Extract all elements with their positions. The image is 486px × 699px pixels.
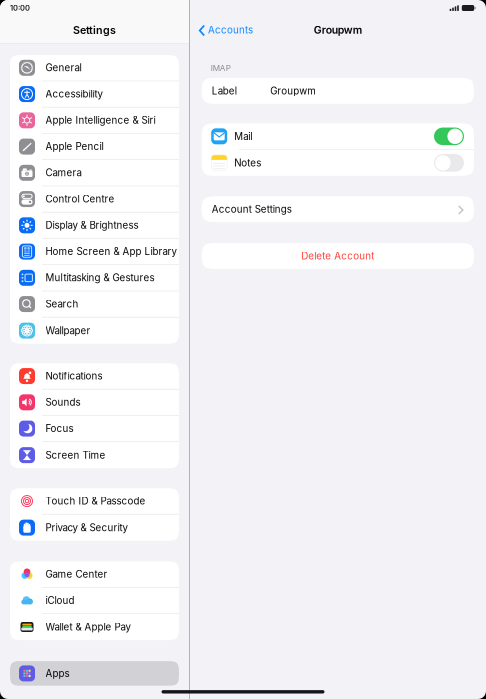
staticText: Focus — [45, 423, 73, 434]
button[interactable]: Mail — [202, 123, 474, 149]
button[interactable]: Privacy & Security — [10, 514, 179, 541]
button[interactable]: Touch ID & Passcode — [10, 488, 179, 514]
staticText: Notifications — [45, 370, 102, 382]
staticText: Wallet & Apple Pay — [45, 621, 130, 633]
button[interactable]: Search — [10, 291, 179, 317]
button[interactable]: Wallet & Apple Pay — [10, 614, 179, 640]
staticText: Accessibility — [45, 88, 102, 100]
staticText: Groupwm — [314, 24, 362, 36]
button[interactable]: Notes — [202, 150, 474, 176]
button[interactable]: Apple Pencil — [10, 134, 179, 160]
button[interactable]: Multitasking & Gestures — [10, 265, 179, 291]
staticText: Touch ID & Passcode — [45, 495, 145, 507]
staticText: Groupwm — [270, 85, 316, 97]
button[interactable]: Account Settings — [202, 196, 474, 222]
staticText: Label — [212, 85, 237, 97]
button[interactable]: Game Center — [10, 561, 179, 588]
staticText: Notes — [234, 157, 261, 169]
staticText: Delete Account — [301, 250, 374, 262]
staticText: Wallpaper — [45, 325, 90, 336]
button[interactable]: Sounds — [10, 389, 179, 416]
button[interactable]: Wallpaper — [10, 317, 179, 344]
staticText: Accounts — [208, 24, 253, 36]
button[interactable]: Camera — [10, 160, 179, 186]
staticText: IMAP — [211, 63, 231, 73]
staticText: Multitasking & Gestures — [45, 272, 154, 284]
button[interactable]: Accounts — [190, 24, 253, 36]
button[interactable]: Delete Account — [202, 243, 474, 269]
staticText: Screen Time — [45, 449, 105, 461]
staticText: Home Screen & App Library — [45, 246, 176, 257]
button[interactable]: Notifications — [10, 363, 179, 389]
button[interactable]: Control Centre — [10, 186, 179, 212]
button[interactable]: General — [10, 55, 179, 81]
staticText: Sounds — [45, 396, 80, 408]
staticText: Search — [45, 298, 78, 310]
button[interactable]: Apple Intelligence & Siri — [10, 107, 179, 134]
button[interactable]: Accessibility — [10, 81, 179, 107]
staticText: Control Centre — [45, 193, 114, 205]
staticText: Settings — [73, 23, 116, 36]
button[interactable]: Screen Time — [10, 442, 179, 468]
staticText: Apple Intelligence & Siri — [45, 114, 155, 126]
staticText: Mail — [234, 130, 252, 142]
staticText: Apple Pencil — [45, 141, 103, 152]
staticText: Camera — [45, 167, 81, 179]
button[interactable]: Display & Brightness — [10, 212, 179, 239]
staticText: General — [45, 62, 81, 74]
staticText: Display & Brightness — [45, 219, 138, 231]
button[interactable]: Apps — [0, 661, 189, 686]
staticText: Account Settings — [212, 203, 292, 215]
button[interactable]: Focus — [10, 416, 179, 442]
button[interactable]: Home Screen & App Library — [10, 239, 179, 265]
staticText: Apps — [45, 667, 69, 679]
staticText: 10:00 — [10, 3, 30, 12]
staticText: Game Center — [45, 568, 107, 580]
staticText: Privacy & Security — [45, 522, 127, 533]
button[interactable]: iCloud — [10, 588, 179, 614]
staticText: iCloud — [45, 594, 74, 606]
